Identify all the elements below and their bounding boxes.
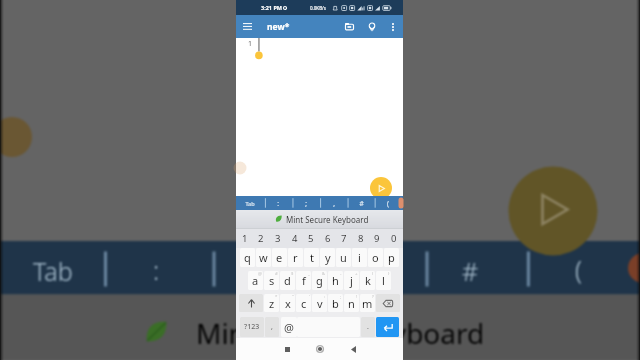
button[interactable]: 9 [369,228,385,249]
button[interactable]: t [304,248,319,267]
button[interactable]: w [256,248,271,267]
staticText: 1 [248,39,253,49]
staticText: ' [309,294,310,300]
button[interactable]: Run script [370,177,392,199]
button[interactable]: Open folder [339,15,359,38]
button[interactable]: 8 [353,228,369,249]
staticText: o [372,250,379,265]
staticText: + [355,271,358,277]
button[interactable]: s [264,271,279,290]
staticText: e [276,250,283,265]
staticText: # [359,199,364,208]
staticText: v [317,296,323,311]
button[interactable]: p [384,248,399,267]
staticText: g [316,273,323,288]
staticText: p [388,250,395,265]
button[interactable]: r [288,248,303,267]
button[interactable]: 6 [320,228,336,249]
button[interactable]: 3 [270,228,286,249]
staticText: w [259,250,268,265]
button[interactable]: . [361,317,375,337]
button[interactable]: More options [383,15,403,38]
staticText: s [269,273,275,288]
button[interactable]: enter [376,317,399,337]
staticText: 0.0KB/s [310,5,326,11]
staticText: y [325,250,331,265]
staticText: - [340,271,342,277]
button[interactable]: 2 [253,228,269,249]
button[interactable]: ?123 [240,317,264,337]
button[interactable]: f [296,271,311,290]
button[interactable]: 5 [303,228,319,249]
button[interactable]: shift [239,294,263,312]
staticText: 0 [391,232,397,245]
button[interactable]: x [280,294,295,312]
button[interactable]: ; [294,196,318,210]
button[interactable]: n [344,294,359,312]
button[interactable]: Back [345,341,361,357]
staticText: $ [291,271,294,277]
button[interactable]: Navigation menu [236,15,257,38]
button[interactable]: i [352,248,367,267]
staticText: Tab [33,254,73,288]
staticText: 5 [308,232,314,245]
button[interactable]: : [266,196,290,210]
button[interactable]: Home [312,341,328,357]
staticText: # [462,254,479,288]
button[interactable]: o [368,248,383,267]
staticText: d [284,273,291,288]
button[interactable]: 1 [237,228,253,249]
button[interactable]: z [264,294,279,312]
button[interactable]: l [376,271,391,290]
button[interactable]: m [360,294,375,312]
button[interactable]: bksp [376,294,400,312]
button[interactable]: Recent apps [279,341,295,357]
staticText: Mint Secure Keyboard [196,314,485,352]
staticText: _ [308,271,310,277]
staticText: z [269,296,275,311]
button[interactable]: a [248,271,263,290]
button[interactable]: q [240,248,255,267]
staticText: f [302,273,306,288]
staticText: r [293,250,298,265]
button[interactable]: ( [376,196,400,210]
button[interactable]: , [265,317,279,337]
staticText: 3:21 PM [261,4,283,11]
button[interactable]: Tab [238,196,262,210]
button[interactable]: 7 [336,228,352,249]
button[interactable]: y [320,248,335,267]
staticText: # [275,271,278,277]
staticText: 4 [292,232,298,245]
button[interactable]: 4 [287,228,303,249]
staticText: n [348,296,355,311]
button[interactable]: # [349,196,373,210]
button[interactable]: j [344,271,359,290]
button[interactable]: g [312,271,327,290]
button[interactable]: Tips [362,15,382,38]
button[interactable]: d [280,271,295,290]
button[interactable]: k [360,271,375,290]
staticText: , [271,322,273,332]
button[interactable]: @ [281,317,297,337]
button[interactable]: c [296,294,311,312]
staticText: m [362,296,373,311]
staticText: new* [267,21,290,33]
button[interactable]: , [322,196,346,210]
button[interactable]: e [272,248,287,267]
staticText: Mint Secure Keyboard [286,214,369,225]
staticText: b [332,296,339,311]
button[interactable]: h [328,271,343,290]
button[interactable]: v [312,294,327,312]
staticText: 6 [325,232,331,245]
staticText: 9 [374,232,380,245]
button[interactable]: b [328,294,343,312]
staticText: l [382,273,385,288]
staticText: Tab [245,200,255,207]
button[interactable]: 0 [386,228,402,249]
button[interactable]: u [336,248,351,267]
staticText: 3 [275,232,281,245]
staticText: ) [388,271,390,277]
staticText: " [292,294,294,300]
staticText: 7 [341,232,347,245]
